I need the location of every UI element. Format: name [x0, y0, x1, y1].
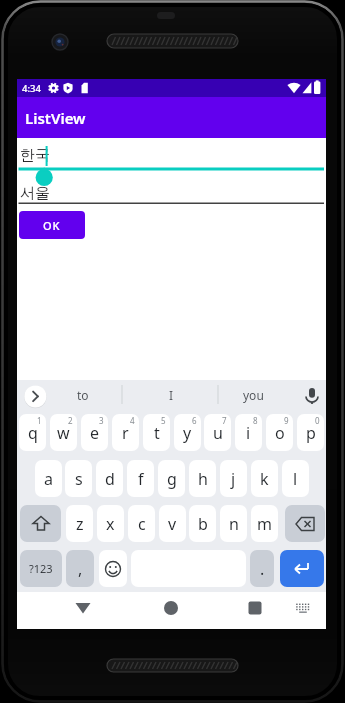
staticText: to [77, 387, 89, 403]
staticText: . [260, 558, 265, 580]
staticText: p [306, 422, 316, 444]
button[interactable]: n [220, 505, 247, 542]
button[interactable] [67, 592, 99, 624]
staticText: l [293, 468, 298, 490]
button[interactable] [289, 594, 317, 622]
button[interactable]: u [204, 414, 231, 451]
staticText: 4:34 [22, 82, 41, 95]
staticText: 서울 [20, 184, 50, 203]
staticText: 한국 [20, 146, 50, 165]
button[interactable]: m [251, 505, 278, 542]
staticText: f [138, 468, 144, 490]
staticText: ListView [25, 108, 86, 128]
button[interactable] [20, 505, 61, 542]
button[interactable]: e [81, 414, 108, 451]
button[interactable] [155, 592, 187, 624]
staticText: OK [43, 218, 61, 233]
staticText: o [275, 422, 285, 444]
staticText: w [57, 422, 70, 444]
button[interactable]: p [297, 414, 324, 451]
staticText: v [168, 513, 177, 535]
staticText: 9 [284, 415, 289, 426]
button[interactable]: z [66, 505, 93, 542]
staticText: r [122, 422, 129, 444]
button[interactable]: k [251, 460, 278, 497]
staticText: I [169, 387, 174, 403]
staticText: 6 [192, 415, 197, 426]
button[interactable]: g [158, 460, 185, 497]
staticText: 0 [315, 415, 320, 426]
staticText: s [75, 468, 83, 490]
staticText: k [260, 468, 269, 490]
button[interactable] [285, 505, 325, 542]
button[interactable]: w [50, 414, 77, 451]
staticText: q [28, 422, 38, 444]
staticText: u [213, 422, 223, 444]
button[interactable]: v [159, 505, 186, 542]
button[interactable]: r [112, 414, 139, 451]
staticText: c [138, 513, 146, 535]
staticText: i [246, 422, 251, 444]
staticText: j [231, 468, 236, 490]
button[interactable]: y [174, 414, 201, 451]
staticText: 2 [68, 415, 73, 426]
staticText: ?123 [29, 561, 53, 576]
staticText: you [243, 387, 264, 403]
button[interactable]: b [189, 505, 216, 542]
button[interactable]: d [96, 460, 123, 497]
staticText: a [44, 468, 53, 490]
button[interactable]: f [127, 460, 154, 497]
button[interactable]: . [250, 550, 274, 587]
button[interactable]: c [128, 505, 155, 542]
staticText: , [78, 558, 83, 580]
button[interactable]: l [282, 460, 309, 497]
button[interactable]: , [66, 550, 94, 587]
button[interactable]: i [235, 414, 262, 451]
button[interactable]: s [65, 460, 92, 497]
staticText: g [167, 468, 177, 490]
button[interactable]: a [35, 460, 62, 497]
staticText: z [76, 513, 84, 535]
button[interactable] [280, 550, 324, 587]
button[interactable]: OK [19, 211, 85, 239]
staticText: d [105, 468, 115, 490]
button[interactable] [99, 550, 127, 587]
staticText: 1 [37, 415, 42, 426]
staticText: t [154, 422, 160, 444]
staticText: m [257, 513, 272, 535]
staticText: n [229, 513, 239, 535]
staticText: y [183, 422, 192, 444]
staticText: e [90, 422, 100, 444]
staticText: 7 [222, 415, 227, 426]
staticText: 8 [253, 415, 258, 426]
staticText: 5 [161, 415, 166, 426]
staticText: b [198, 513, 208, 535]
button[interactable] [239, 592, 271, 624]
staticText: h [198, 468, 208, 490]
button[interactable]: j [220, 460, 247, 497]
button[interactable]: ?123 [20, 550, 62, 587]
staticText: 3 [99, 415, 104, 426]
button[interactable]: h [189, 460, 216, 497]
button[interactable]: q [19, 414, 46, 451]
button[interactable]: o [266, 414, 293, 451]
staticText: 4 [130, 415, 135, 426]
button[interactable]: x [97, 505, 124, 542]
staticText: x [106, 513, 115, 535]
button[interactable]: t [143, 414, 170, 451]
